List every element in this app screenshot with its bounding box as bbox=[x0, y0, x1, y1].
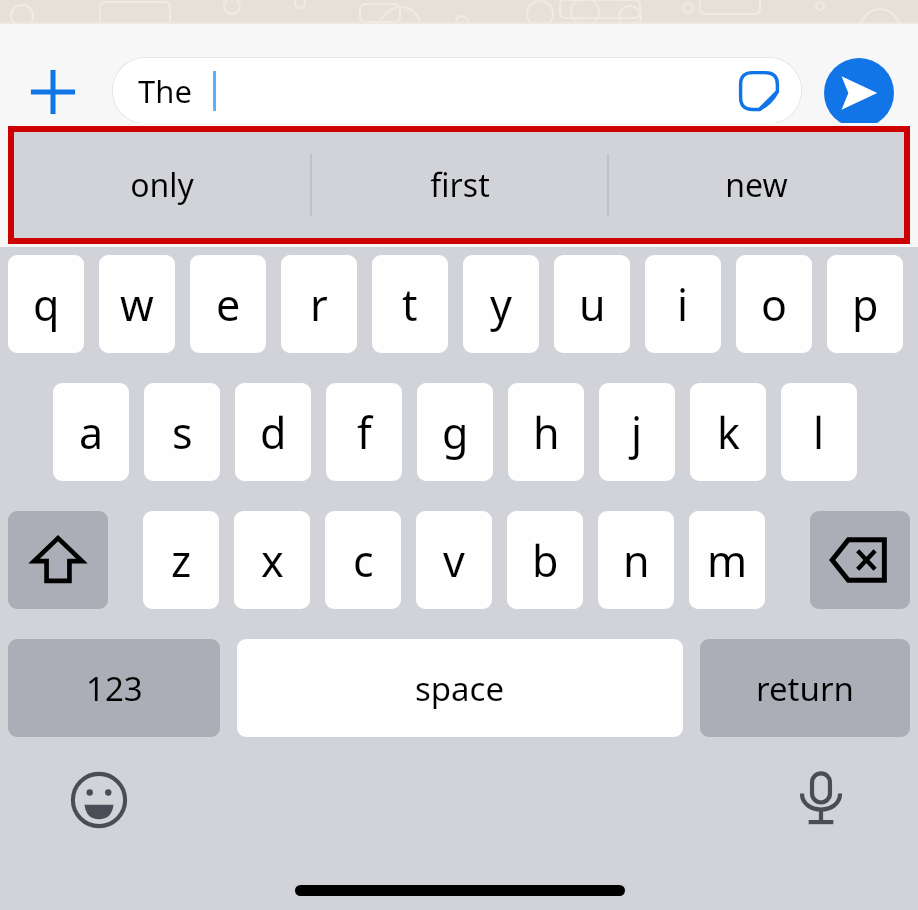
staticText: w bbox=[120, 275, 154, 334]
staticText: j bbox=[631, 403, 643, 462]
staticText: p bbox=[852, 275, 879, 334]
staticText: s bbox=[172, 403, 193, 462]
button[interactable]: Send bbox=[824, 58, 894, 128]
button[interactable]: f bbox=[326, 383, 402, 481]
button[interactable]: a bbox=[53, 383, 129, 481]
staticText: o bbox=[761, 275, 788, 334]
button[interactable]: Shift bbox=[8, 511, 108, 609]
button[interactable]: The bbox=[112, 57, 802, 124]
button[interactable]: new bbox=[609, 132, 904, 238]
staticText: l bbox=[813, 403, 825, 462]
button[interactable]: v bbox=[416, 511, 492, 609]
staticText: q bbox=[33, 275, 60, 334]
staticText: b bbox=[532, 531, 559, 590]
staticText: a bbox=[79, 403, 104, 462]
button[interactable]: u bbox=[554, 255, 630, 353]
button[interactable]: Stickers bbox=[736, 68, 782, 114]
button[interactable]: j bbox=[599, 383, 675, 481]
button[interactable]: k bbox=[690, 383, 766, 481]
staticText: 123 bbox=[86, 666, 143, 711]
button[interactable]: n bbox=[598, 511, 674, 609]
staticText: first bbox=[430, 163, 490, 207]
staticText: u bbox=[579, 275, 606, 334]
staticText: d bbox=[260, 403, 287, 462]
staticText: t bbox=[402, 275, 418, 334]
button[interactable]: x bbox=[234, 511, 310, 609]
button[interactable]: i bbox=[645, 255, 721, 353]
button[interactable]: Emoji bbox=[66, 767, 132, 833]
staticText: e bbox=[216, 275, 241, 334]
staticText: k bbox=[717, 403, 740, 462]
button[interactable]: only bbox=[14, 132, 310, 238]
button[interactable]: w bbox=[99, 255, 175, 353]
button[interactable]: l bbox=[781, 383, 857, 481]
button[interactable]: d bbox=[235, 383, 311, 481]
button[interactable]: first bbox=[312, 132, 607, 238]
button[interactable]: y bbox=[463, 255, 539, 353]
button[interactable]: m bbox=[689, 511, 765, 609]
button[interactable]: e bbox=[190, 255, 266, 353]
button[interactable]: s bbox=[144, 383, 220, 481]
button[interactable]: b bbox=[507, 511, 583, 609]
staticText: r bbox=[310, 275, 328, 334]
staticText: x bbox=[261, 531, 284, 590]
button[interactable]: Backspace bbox=[810, 511, 910, 609]
staticText: n bbox=[623, 531, 650, 590]
button[interactable]: 123 bbox=[8, 639, 220, 737]
button[interactable]: p bbox=[827, 255, 903, 353]
button[interactable]: t bbox=[372, 255, 448, 353]
button[interactable]: space bbox=[237, 639, 683, 737]
button[interactable]: h bbox=[508, 383, 584, 481]
button[interactable]: q bbox=[8, 255, 84, 353]
staticText: space bbox=[415, 666, 505, 711]
staticText: c bbox=[353, 531, 374, 590]
staticText: v bbox=[443, 531, 465, 590]
button[interactable]: c bbox=[325, 511, 401, 609]
button[interactable]: o bbox=[736, 255, 812, 353]
staticText: The bbox=[138, 70, 192, 112]
staticText: m bbox=[707, 531, 748, 590]
button[interactable]: Attach bbox=[22, 61, 84, 123]
staticText: new bbox=[725, 163, 788, 207]
button[interactable]: z bbox=[143, 511, 219, 609]
staticText: only bbox=[130, 163, 194, 207]
button[interactable]: Dictation bbox=[788, 765, 854, 831]
staticText: g bbox=[442, 403, 469, 462]
button[interactable]: r bbox=[281, 255, 357, 353]
staticText: f bbox=[357, 403, 372, 462]
button[interactable]: return bbox=[700, 639, 910, 737]
button[interactable]: g bbox=[417, 383, 493, 481]
staticText: z bbox=[171, 531, 192, 590]
staticText: i bbox=[677, 275, 689, 334]
staticText: h bbox=[533, 403, 560, 462]
staticText: y bbox=[490, 275, 512, 334]
staticText: return bbox=[756, 666, 854, 711]
